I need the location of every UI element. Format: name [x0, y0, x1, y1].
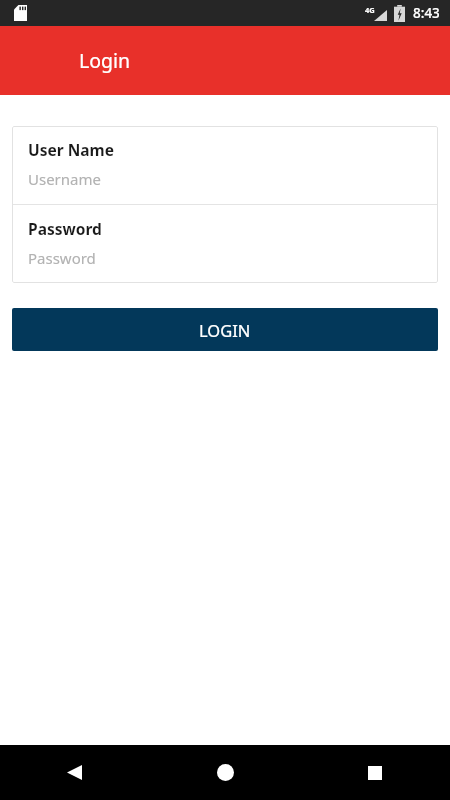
staticText: 8:43: [413, 4, 440, 22]
button[interactable]: Recent apps: [300, 745, 450, 800]
button[interactable]: Home: [150, 745, 300, 800]
button[interactable]: Back: [0, 745, 150, 800]
staticText: Password: [28, 248, 96, 268]
staticText: Password: [28, 218, 102, 239]
button[interactable]: LOGIN: [12, 308, 438, 351]
staticText: Login: [79, 47, 131, 74]
staticText: User Name: [28, 139, 114, 160]
button[interactable]: Password: [12, 205, 438, 283]
staticText: LOGIN: [199, 319, 251, 341]
staticText: Username: [28, 169, 101, 189]
button[interactable]: User Name: [12, 126, 438, 204]
staticText: 4G: [365, 5, 375, 15]
